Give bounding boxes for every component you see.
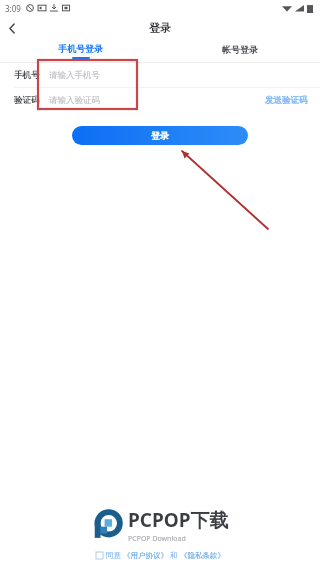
button[interactable]: 请输入手机号 bbox=[49, 70, 308, 81]
staticText: 帐号登录 bbox=[222, 44, 258, 55]
staticText: 发送验证码 bbox=[265, 95, 308, 106]
button[interactable]: 帐号登录 bbox=[160, 40, 320, 62]
staticText: 《隐私条款》 bbox=[180, 551, 225, 560]
staticText: 和 bbox=[170, 551, 178, 560]
staticText: 登录 bbox=[151, 130, 169, 141]
staticText: 请输入手机号 bbox=[49, 70, 100, 81]
staticText: 验证码 bbox=[14, 95, 40, 106]
staticText: 3:09 bbox=[5, 3, 21, 14]
staticText: PCPOP Download bbox=[128, 534, 186, 544]
staticText: 手机号登录 bbox=[58, 43, 103, 54]
staticText: 《用户协议》 bbox=[123, 551, 168, 560]
button[interactable]: 手机号登录 bbox=[0, 40, 160, 62]
staticText: 登录 bbox=[149, 21, 171, 35]
button[interactable]: 登录 bbox=[72, 126, 248, 145]
button[interactable]: Back bbox=[0, 16, 24, 40]
button[interactable]: 同意 bbox=[96, 551, 225, 560]
button[interactable]: 发送验证码 bbox=[265, 95, 308, 106]
staticText: 同意 bbox=[106, 551, 121, 560]
button[interactable]: 请输入验证码 bbox=[49, 95, 265, 106]
staticText: 手机号 bbox=[14, 70, 40, 81]
staticText: 请输入验证码 bbox=[49, 95, 100, 106]
staticText: PCPOP下载 bbox=[128, 507, 229, 533]
